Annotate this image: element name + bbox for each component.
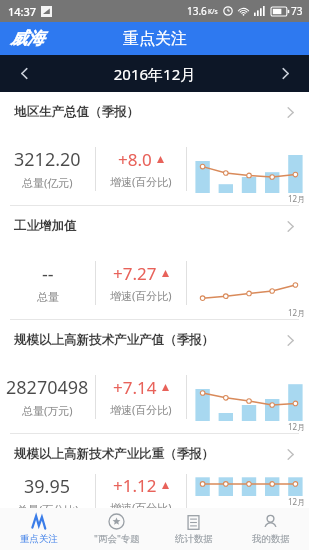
staticText: -- <box>42 262 54 287</box>
other: Statistics data <box>185 514 202 531</box>
staticText: K/s <box>208 7 218 16</box>
other: My data <box>262 514 279 531</box>
button[interactable]: Previous month <box>0 55 48 92</box>
staticText: 总量 <box>37 290 59 304</box>
button[interactable]: Two Sessions topic <box>78 508 155 550</box>
other: Two Sessions topic <box>108 513 125 530</box>
staticText: 14:37 <box>8 4 37 19</box>
staticText: 地区生产总值（季报） <box>14 104 284 120</box>
staticText: 统计数据 <box>175 533 213 545</box>
staticText: +8.0 <box>118 148 152 171</box>
staticText: 12月 <box>288 496 306 507</box>
button[interactable]: 规模以上高新技术产业产值（季报） <box>0 320 309 433</box>
staticText: 重点关注 <box>123 29 187 49</box>
staticText: 威海 <box>10 28 44 49</box>
staticText: 增速(百分比) <box>110 288 172 303</box>
staticText: 3212.20 <box>14 147 81 172</box>
staticText: 我的数据 <box>252 533 290 545</box>
button[interactable]: 工业增加值 <box>0 206 309 319</box>
button[interactable]: Next month <box>261 55 309 92</box>
staticText: +7.27 <box>113 262 157 285</box>
staticText: 12月 <box>288 421 306 432</box>
staticText: "两会"专题 <box>94 532 140 545</box>
staticText: +1.12 <box>113 474 157 497</box>
staticText: 增速(百分比) <box>110 500 172 508</box>
staticText: +7.14 <box>113 376 157 399</box>
staticText: 2016年12月 <box>48 64 261 84</box>
staticText: 规模以上高新技术产业比重（季报） <box>14 446 284 462</box>
staticText: 增速(百分比) <box>110 174 172 189</box>
staticText: 总量(亿元) <box>22 175 73 190</box>
button[interactable]: 地区生产总值（季报） <box>0 92 309 205</box>
button[interactable]: 规模以上高新技术产业比重（季报） <box>0 434 309 508</box>
staticText: 12月 <box>288 193 306 204</box>
staticText: 规模以上高新技术产业产值（季报） <box>14 332 284 348</box>
button[interactable]: My data <box>232 508 309 550</box>
button[interactable]: Key focus <box>0 508 78 550</box>
staticText: 28270498 <box>6 375 89 400</box>
staticText: 12月 <box>288 307 306 318</box>
staticText: 总量(百分比) <box>17 502 79 508</box>
staticText: 重点关注 <box>20 533 58 545</box>
staticText: 73 <box>291 4 303 18</box>
button[interactable]: Statistics data <box>155 508 232 550</box>
staticText: 增速(百分比) <box>110 402 172 417</box>
other: Key focus <box>31 514 48 531</box>
staticText: 13.6 <box>187 4 207 18</box>
staticText: 总量(万元) <box>22 403 73 418</box>
staticText: 39.95 <box>24 474 71 499</box>
staticText: 工业增加值 <box>14 218 284 234</box>
